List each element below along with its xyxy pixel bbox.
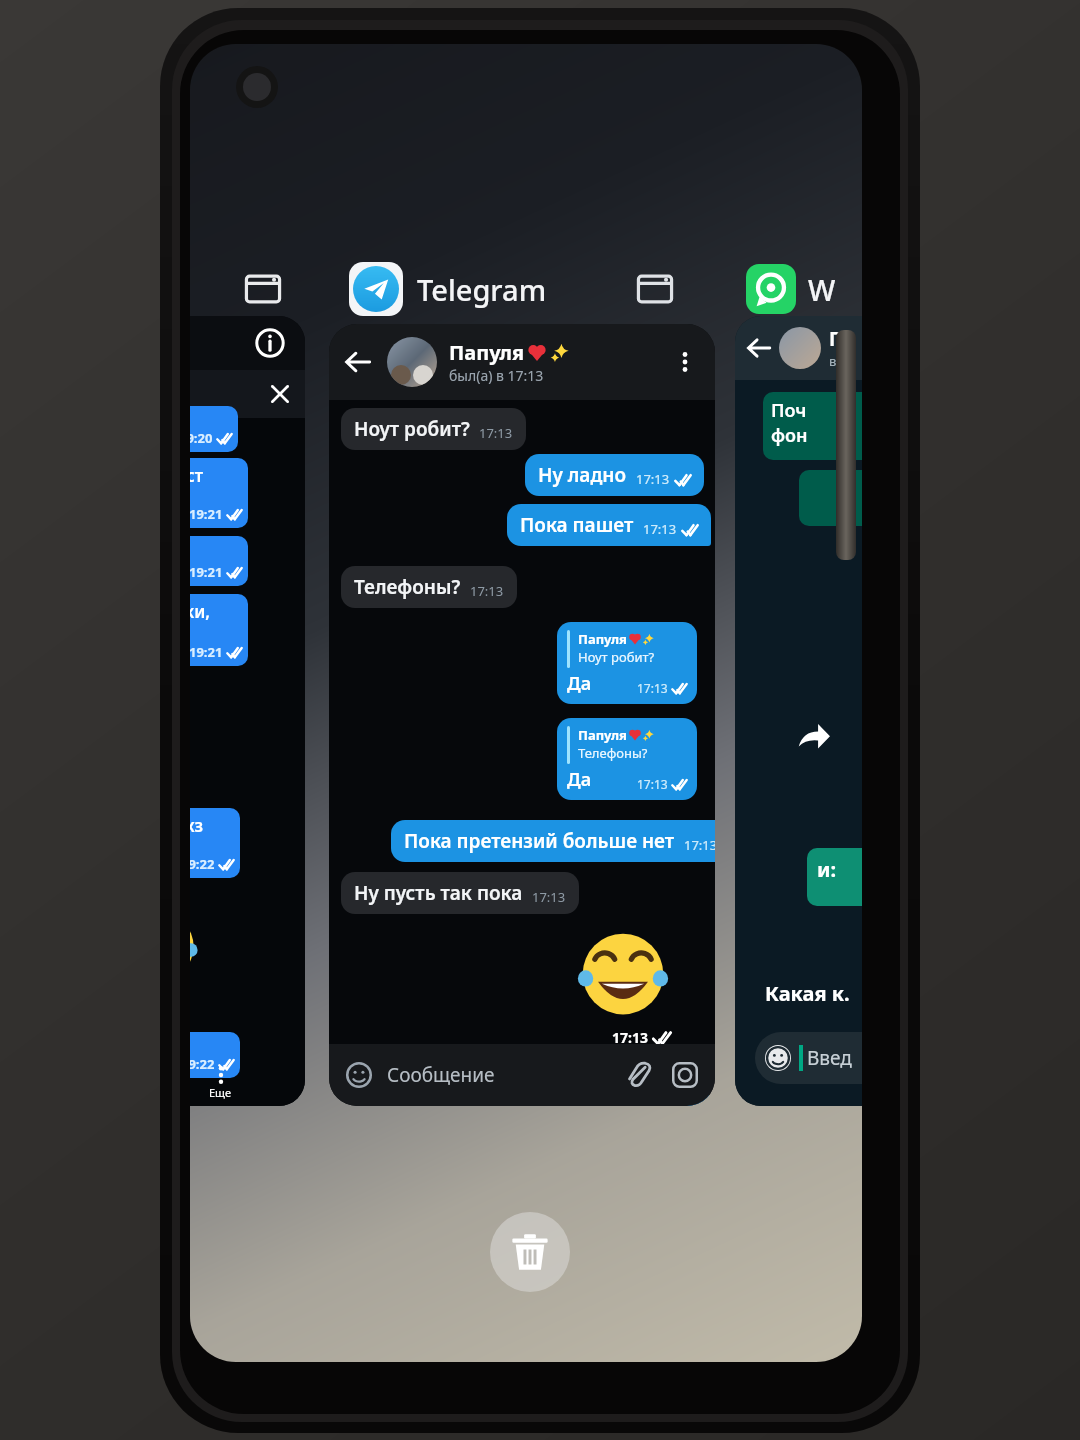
staticText: Поч: [771, 398, 807, 423]
button[interactable]: Back: [329, 324, 715, 1106]
staticText: W: [808, 270, 836, 309]
staticText: Телефоны?: [354, 574, 461, 600]
staticText: Введ: [807, 1045, 852, 1071]
button[interactable]: ообще хз: [190, 808, 240, 878]
staticText: был(а) в 17:13: [449, 366, 544, 385]
staticText: фон: [771, 423, 808, 448]
staticText: 19:22: [190, 855, 215, 873]
staticText: Пока пашет: [520, 512, 634, 538]
staticText: Какая к.: [765, 980, 850, 1007]
staticText: Па: [829, 326, 855, 352]
button[interactable]: Пап: [581, 1072, 709, 1106]
button[interactable]: Close: [269, 383, 291, 405]
other: Forward: [797, 720, 831, 754]
staticText: Да: [567, 767, 592, 792]
button[interactable]: Пока претензий больше нет: [391, 820, 715, 862]
button[interactable]: Поч: [763, 392, 862, 460]
staticText: Ноут робит?: [578, 648, 655, 666]
other: Back: [345, 349, 371, 375]
button[interactable]: Back: [735, 316, 862, 380]
staticText: 17:13: [643, 520, 677, 538]
button[interactable]: Telegram: [345, 258, 551, 320]
button[interactable]: Папуля: [557, 718, 697, 800]
button[interactable]: Сообщение: [329, 1044, 715, 1106]
button[interactable]: [799, 470, 862, 526]
staticText: 17:13: [479, 424, 513, 442]
button[interactable]: Ну пусть так пока: [341, 872, 579, 914]
button[interactable]: Пока пашет: [507, 504, 711, 546]
staticText: 17:13: [612, 1028, 648, 1047]
staticText: 19:21: [190, 643, 223, 661]
staticText: 17:13: [636, 470, 670, 488]
staticText: Пап: [594, 1080, 632, 1106]
button[interactable]: Папуля: [557, 622, 697, 704]
staticText: 17:13: [637, 776, 668, 792]
staticText: Ноут робит?: [354, 416, 470, 442]
staticText: 17:13: [532, 888, 566, 906]
button[interactable]: Back: [735, 316, 862, 1106]
staticText: Сообщение: [387, 1062, 495, 1088]
staticText: 19:22: [190, 1055, 215, 1073]
staticText: 17:13: [637, 680, 668, 696]
button[interactable]: Back: [329, 324, 715, 400]
staticText: и:: [817, 856, 837, 883]
staticText: 17:13: [470, 582, 504, 600]
button[interactable]: Введ: [755, 1032, 862, 1084]
button[interactable]: Split screen: [632, 266, 678, 312]
button[interactable]: зе: [190, 536, 248, 586]
staticText: Папуля: [449, 339, 525, 366]
staticText: Папуля: [578, 630, 627, 648]
button[interactable]: W: [742, 260, 840, 318]
staticText: 19:21: [190, 505, 223, 523]
staticText: Еще: [209, 1085, 232, 1100]
button[interactable]: Телефоны?: [341, 566, 517, 608]
other: Back: [747, 336, 771, 360]
staticText: Ну ладно: [538, 462, 627, 488]
button[interactable]: Ну ладно: [525, 454, 704, 496]
staticText: Пока претензий больше нет: [404, 828, 675, 854]
button[interactable]: и:: [807, 848, 862, 906]
staticText: Да: [567, 671, 592, 696]
button[interactable]: Ноут робит?: [341, 408, 526, 450]
staticText: 17:13: [684, 836, 715, 854]
button[interactable]: 19:20: [190, 406, 238, 452]
staticText: в се: [829, 352, 854, 370]
button[interactable]: ём: [190, 1032, 240, 1078]
staticText: Telegram: [417, 270, 547, 309]
staticText: ьде текст: [190, 464, 204, 487]
button[interactable]: Camera: [671, 1061, 699, 1089]
staticText: Телефоны?: [578, 744, 648, 762]
button[interactable]: ьде текст: [190, 458, 248, 528]
button[interactable]: More options: [671, 348, 699, 376]
staticText: Ну пусть так пока: [354, 880, 523, 906]
button[interactable]: VK app icon: [240, 266, 286, 312]
button[interactable]: Clear all recent apps: [490, 1212, 570, 1292]
button[interactable]: Info: [255, 328, 285, 358]
staticText: картинки,: [190, 600, 211, 623]
button[interactable]: Attach file: [625, 1061, 653, 1089]
staticText: 19:21: [190, 563, 223, 581]
staticText: 19:20: [190, 429, 213, 447]
button[interactable]: Info: [190, 316, 305, 1106]
staticText: ообще хз: [190, 814, 204, 837]
staticText: Папуля: [578, 726, 627, 744]
button[interactable]: картинки,: [190, 594, 248, 666]
